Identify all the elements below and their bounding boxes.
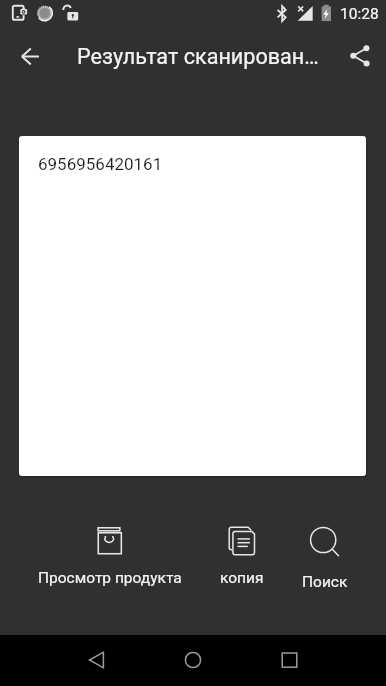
button[interactable]: Просмотр продукта [38, 527, 182, 587]
button[interactable]: Home [171, 638, 216, 683]
button[interactable]: копия [220, 527, 264, 587]
button[interactable]: Back [74, 638, 119, 683]
staticText: копия [220, 569, 264, 587]
button[interactable]: Share [338, 36, 382, 80]
staticText: 6956956420161 [38, 154, 163, 174]
staticText: Результат сканирован… [77, 44, 319, 69]
staticText: Просмотр продукта [38, 569, 182, 587]
staticText: Поиск [302, 573, 348, 591]
button[interactable]: Поиск [302, 527, 348, 591]
staticText: 10:28 [340, 5, 379, 23]
button[interactable]: Back [8, 36, 52, 80]
button[interactable]: Recent apps [267, 638, 312, 683]
